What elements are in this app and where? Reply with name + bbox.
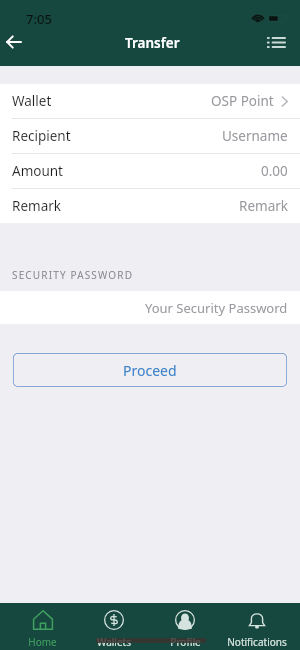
staticText: Wallets [97,635,131,649]
staticText: SECURITY PASSWORD [12,268,134,282]
staticText: Your Security Password [145,299,288,317]
button[interactable]: Your Security Password [0,291,300,324]
button[interactable]: Profile [149,603,221,650]
button[interactable]: Recipient [0,119,300,153]
button[interactable]: List options [266,23,300,61]
staticText: Home [28,635,57,649]
button[interactable]: Back [0,23,28,61]
staticText: 7:05 [26,10,52,28]
staticText: Wallet [12,92,52,110]
staticText: 0.00 [261,162,288,180]
button[interactable]: Wallet [0,84,300,118]
button[interactable]: Proceed [13,353,287,387]
staticText: Remark [239,197,288,215]
button[interactable]: Amount [0,154,300,188]
staticText: Transfer [125,34,180,52]
staticText: Remark [12,197,61,215]
staticText: Proceed [123,361,177,380]
staticText: OSP Point [211,92,274,110]
button[interactable]: Notifications [221,603,293,650]
button[interactable]: Home [7,603,78,650]
button[interactable]: Wallets [78,603,149,650]
staticText: Amount [12,162,63,180]
staticText: Recipient [12,127,71,145]
staticText: Profile [170,635,201,649]
staticText: Username [222,127,288,145]
button[interactable]: Remark [0,189,300,223]
staticText: Notifications [227,635,287,649]
